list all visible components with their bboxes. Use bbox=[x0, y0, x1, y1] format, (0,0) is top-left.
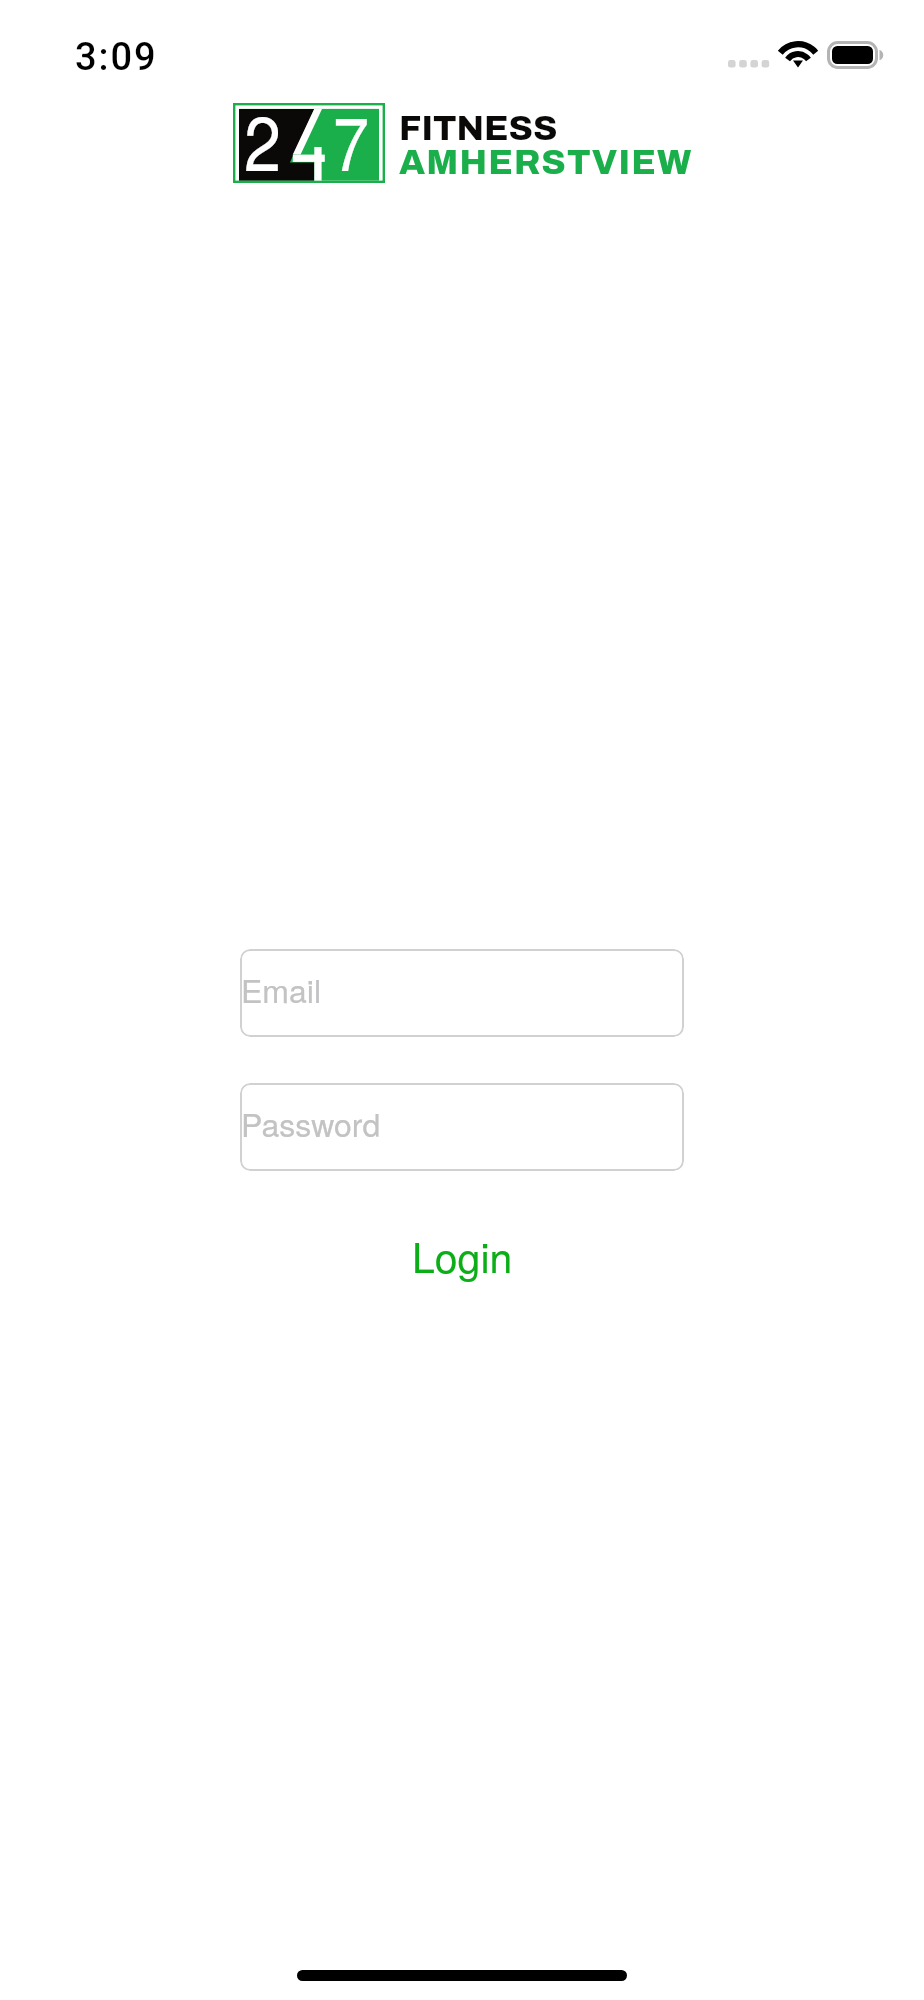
button[interactable]: Email bbox=[240, 949, 684, 1037]
staticText: Login bbox=[412, 1226, 513, 1285]
button[interactable]: Password bbox=[240, 1083, 684, 1171]
staticText: Email bbox=[241, 966, 322, 1012]
staticText: 3:09 bbox=[75, 35, 158, 80]
other: Wi-Fi bbox=[779, 41, 817, 69]
other: Battery bbox=[827, 41, 885, 69]
staticText: FITNESS bbox=[399, 109, 558, 147]
staticText: Password bbox=[241, 1100, 381, 1146]
staticText: AMHERSTVIEW bbox=[399, 143, 693, 181]
button[interactable]: Login bbox=[382, 1219, 542, 1291]
other: Cellular signal bbox=[728, 60, 770, 70]
